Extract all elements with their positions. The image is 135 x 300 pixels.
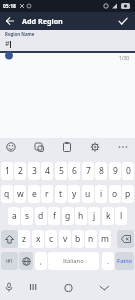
staticText: m <box>101 233 109 245</box>
button[interactable]: Fatto <box>115 252 134 270</box>
staticText: Region Name <box>5 31 35 37</box>
staticText: u <box>85 188 91 200</box>
button[interactable] <box>88 140 102 154</box>
staticText: j <box>93 210 96 222</box>
button[interactable]: Italiano <box>48 252 99 270</box>
staticText: y <box>72 188 77 200</box>
staticText: 8 <box>99 165 104 177</box>
staticText: i <box>100 188 103 200</box>
staticText: 3 <box>32 165 37 177</box>
button[interactable]: 5 <box>55 162 67 180</box>
staticText: Add Region <box>22 16 63 26</box>
button[interactable] <box>3 282 15 294</box>
staticText: . <box>107 257 109 266</box>
button[interactable]: o <box>109 185 121 203</box>
staticText: 2 <box>18 165 23 177</box>
staticText: e <box>32 188 37 200</box>
button[interactable]: b <box>72 230 84 248</box>
staticText: k <box>106 210 111 222</box>
button[interactable] <box>32 140 46 154</box>
button[interactable]: j <box>88 207 100 225</box>
button[interactable]: 1 <box>1 162 13 180</box>
staticText: 4 <box>45 165 50 177</box>
button[interactable] <box>27 282 39 294</box>
button[interactable]: 0 <box>122 162 134 180</box>
button[interactable]: 7 <box>82 162 94 180</box>
button[interactable] <box>4 140 18 154</box>
staticText: x <box>36 233 41 245</box>
button[interactable]: z <box>18 230 30 248</box>
staticText: g <box>65 210 71 222</box>
staticText: q <box>4 188 10 200</box>
button[interactable]: g <box>62 207 74 225</box>
button[interactable] <box>115 14 131 28</box>
button[interactable] <box>97 282 111 296</box>
staticText: 6 <box>72 165 77 177</box>
button[interactable]: 4 <box>41 162 53 180</box>
staticText: # <box>5 38 10 48</box>
button[interactable]: d <box>35 207 47 225</box>
button[interactable]: i <box>95 185 107 203</box>
button[interactable]: q <box>1 185 13 203</box>
button[interactable]: l <box>115 207 127 225</box>
button[interactable] <box>117 230 134 248</box>
button[interactable]: 6 <box>68 162 80 180</box>
button[interactable]: e <box>28 185 40 203</box>
button[interactable]: 3 <box>28 162 40 180</box>
button[interactable]: r <box>41 185 53 203</box>
staticText: Italiano <box>63 257 84 265</box>
staticText: f <box>53 210 56 222</box>
staticText: 05:18 <box>3 3 16 10</box>
button[interactable]: p <box>122 185 134 203</box>
button[interactable]: k <box>102 207 114 225</box>
button[interactable]: h <box>75 207 87 225</box>
button[interactable]: c <box>45 230 57 248</box>
button[interactable]: , <box>35 252 47 270</box>
staticText: !#1 <box>6 258 13 264</box>
button[interactable]: u <box>82 185 94 203</box>
button[interactable]: 2 <box>14 162 26 180</box>
button[interactable]: v <box>59 230 71 248</box>
button[interactable]: a <box>8 207 20 225</box>
staticText: 9 <box>113 165 118 177</box>
staticText: t <box>59 188 63 200</box>
button[interactable]: m <box>99 230 111 248</box>
button[interactable]: s <box>21 207 33 225</box>
staticText: d <box>38 210 44 222</box>
button[interactable]: n <box>85 230 97 248</box>
button[interactable]: x <box>32 230 44 248</box>
staticText: 1 <box>5 165 10 177</box>
button[interactable] <box>1 230 18 248</box>
button[interactable]: f <box>48 207 60 225</box>
staticText: 0 <box>126 165 131 177</box>
staticText: o <box>112 188 118 200</box>
staticText: , <box>40 257 42 266</box>
button[interactable] <box>60 140 74 154</box>
staticText: z <box>22 233 26 245</box>
staticText: w <box>17 188 24 200</box>
staticText: l <box>120 210 123 222</box>
staticText: r <box>45 188 49 200</box>
staticText: v <box>63 233 68 245</box>
staticText: a <box>12 210 17 222</box>
button[interactable] <box>19 252 33 270</box>
staticText: 5 <box>59 165 64 177</box>
button[interactable] <box>62 282 75 295</box>
button[interactable]: !#1 <box>1 252 18 270</box>
staticText: h <box>78 210 84 222</box>
staticText: b <box>75 233 81 245</box>
staticText: 7 <box>86 165 91 177</box>
button[interactable]: w <box>14 185 26 203</box>
staticText: Fatto <box>117 257 132 265</box>
staticText: c <box>49 233 54 245</box>
staticText: s <box>25 210 30 222</box>
button[interactable] <box>116 140 130 154</box>
staticText: p <box>125 188 131 200</box>
button[interactable]: . <box>102 252 114 270</box>
button[interactable]: 8 <box>95 162 107 180</box>
button[interactable] <box>2 14 18 28</box>
button[interactable]: y <box>68 185 80 203</box>
button[interactable]: 9 <box>109 162 121 180</box>
staticText: 1/30 <box>119 55 130 62</box>
button[interactable]: t <box>55 185 67 203</box>
